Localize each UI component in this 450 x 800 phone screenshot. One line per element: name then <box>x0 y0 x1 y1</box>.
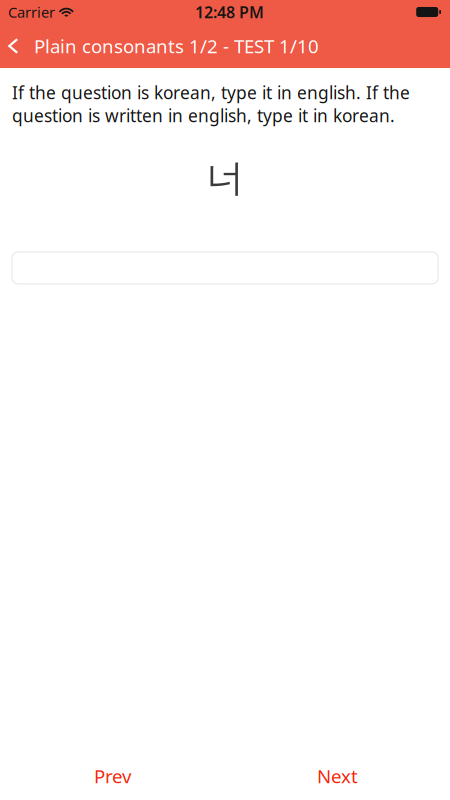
button[interactable]: Prev <box>0 759 225 793</box>
button[interactable]: Next <box>225 759 450 793</box>
button[interactable]: Back <box>0 24 34 68</box>
staticText: If the question is korean, type it in en… <box>12 81 410 127</box>
button[interactable]: Answer text field <box>0 252 450 284</box>
staticText: 12:48 PM <box>195 1 264 23</box>
staticText: Prev <box>94 764 131 788</box>
staticText: 너 <box>206 155 243 201</box>
staticText: Plain consonants 1/2 - TEST 1/10 <box>34 34 319 58</box>
staticText: Next <box>317 764 358 788</box>
staticText: Carrier <box>8 2 55 22</box>
